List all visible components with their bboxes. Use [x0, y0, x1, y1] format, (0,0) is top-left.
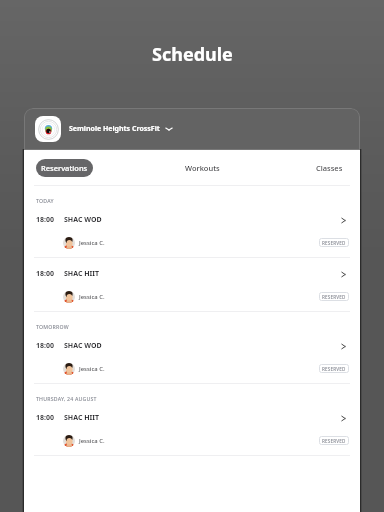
- staticText: SHAC WOD: [64, 215, 102, 225]
- staticText: RESERVED: [322, 438, 346, 444]
- staticText: SHAC HIIT: [64, 269, 100, 279]
- button[interactable]: Reservations: [36, 159, 93, 177]
- staticText: THURSDAY, 24 AUGUST: [36, 395, 97, 402]
- button[interactable]: Classes: [308, 159, 351, 177]
- staticText: 18:00: [36, 413, 54, 423]
- button[interactable]: 18:00: [24, 258, 360, 285]
- button[interactable]: 18:00: [24, 204, 360, 231]
- staticText: 18:00: [36, 215, 54, 225]
- button[interactable]: 18:00: [24, 402, 360, 429]
- staticText: TODAY: [36, 197, 54, 204]
- staticText: SHAC WOD: [64, 341, 102, 351]
- other: Change gym: [165, 125, 173, 133]
- staticText: 18:00: [36, 341, 54, 351]
- staticText: RESERVED: [322, 366, 346, 372]
- staticText: Schedule: [152, 42, 233, 67]
- staticText: Seminole Heights CrossFit: [69, 124, 160, 134]
- button[interactable]: Seminole Heights CrossFit: [24, 108, 360, 150]
- staticText: Jessica C.: [79, 293, 105, 301]
- staticText: Jessica C.: [79, 365, 105, 373]
- button[interactable]: 18:00: [24, 330, 360, 357]
- staticText: 18:00: [36, 269, 54, 279]
- staticText: Jessica C.: [79, 437, 105, 445]
- button[interactable]: Workouts: [177, 159, 228, 177]
- staticText: RESERVED: [322, 294, 346, 300]
- staticText: TOMORROW: [36, 323, 69, 330]
- staticText: Reservations: [41, 163, 88, 173]
- staticText: Classes: [316, 163, 343, 173]
- staticText: SHAC HIIT: [64, 413, 100, 423]
- staticText: RESERVED: [322, 240, 346, 246]
- staticText: Jessica C.: [79, 239, 105, 247]
- staticText: Workouts: [185, 163, 220, 173]
